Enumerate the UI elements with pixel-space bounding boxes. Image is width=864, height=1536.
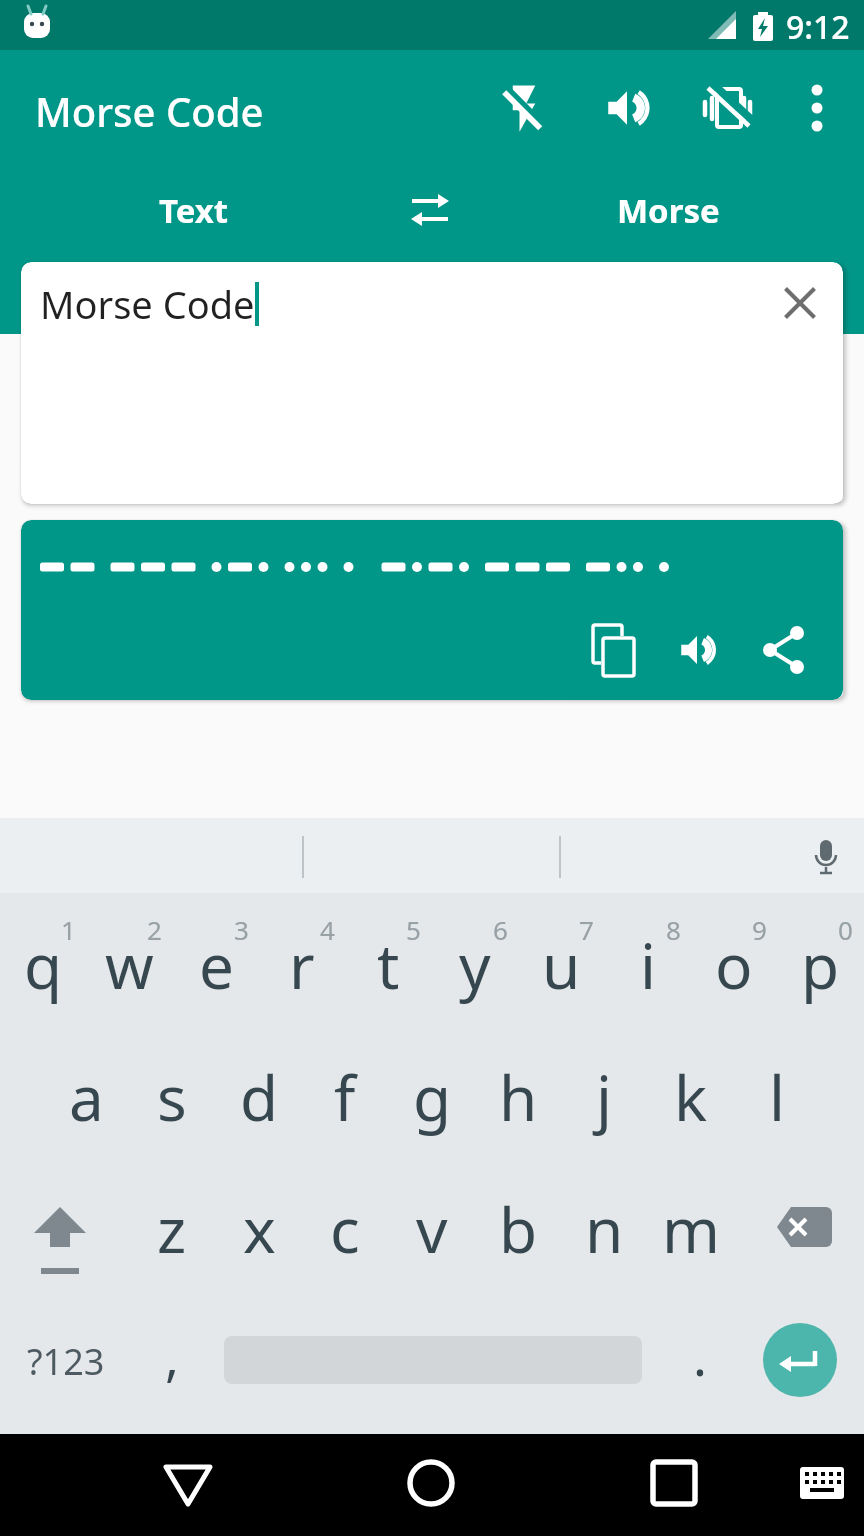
button[interactable]: s — [129, 1032, 215, 1162]
button[interactable] — [582, 618, 646, 682]
staticText: 2 — [147, 912, 162, 947]
button[interactable] — [492, 76, 556, 140]
staticText: 6 — [493, 912, 508, 947]
button[interactable]: r — [259, 900, 345, 1030]
button[interactable] — [665, 618, 729, 682]
button[interactable]: u — [518, 900, 604, 1030]
button[interactable]: k — [648, 1032, 734, 1162]
button[interactable]: a — [43, 1032, 129, 1162]
button[interactable]: x — [216, 1164, 302, 1294]
button[interactable]: . — [660, 1290, 740, 1420]
staticText: p — [801, 923, 840, 1007]
staticText: 3 — [234, 912, 249, 947]
staticText: f — [334, 1055, 356, 1139]
button[interactable]: q — [0, 900, 86, 1030]
staticText: 4 — [320, 912, 335, 947]
staticText: z — [157, 1187, 187, 1271]
button[interactable]: z — [129, 1164, 215, 1294]
button[interactable] — [768, 271, 832, 335]
staticText: 9 — [752, 912, 767, 947]
staticText: 9:12 — [786, 5, 850, 49]
button[interactable]: c — [302, 1164, 388, 1294]
staticText: y — [459, 923, 491, 1007]
button[interactable]: i — [605, 900, 691, 1030]
staticText: n — [585, 1187, 624, 1271]
staticText: r — [289, 923, 315, 1007]
button[interactable] — [386, 1438, 476, 1528]
button[interactable] — [782, 1443, 862, 1523]
button[interactable] — [143, 1439, 233, 1529]
staticText: 7 — [579, 912, 594, 947]
button[interactable]: m — [648, 1164, 734, 1294]
button[interactable] — [629, 1438, 719, 1528]
staticText: j — [596, 1055, 612, 1139]
button[interactable]: j — [561, 1032, 647, 1162]
button[interactable]: t — [345, 900, 431, 1030]
button[interactable] — [695, 76, 759, 140]
button[interactable]: w — [86, 900, 172, 1030]
button[interactable] — [749, 1162, 859, 1292]
staticText: l — [769, 1055, 785, 1139]
staticText: , — [165, 1320, 179, 1391]
staticText: o — [715, 923, 753, 1007]
button[interactable] — [793, 76, 841, 140]
staticText: a — [69, 1055, 104, 1139]
staticText: d — [240, 1055, 279, 1139]
staticText: 0 — [838, 912, 853, 947]
button[interactable] — [5, 1175, 115, 1305]
staticText: 8 — [666, 912, 681, 947]
button[interactable]: f — [302, 1032, 388, 1162]
staticText: i — [640, 923, 656, 1007]
staticText: h — [499, 1055, 538, 1139]
staticText: e — [199, 923, 234, 1007]
staticText: Morse Code — [40, 278, 255, 330]
staticText: ?123 — [27, 1337, 105, 1386]
button[interactable]: b — [475, 1164, 561, 1294]
button[interactable] — [763, 1323, 837, 1397]
staticText: g — [413, 1055, 452, 1139]
staticText: k — [674, 1055, 708, 1139]
button[interactable]: y — [432, 900, 518, 1030]
staticText: v — [416, 1187, 448, 1271]
staticText: . — [693, 1320, 707, 1391]
staticText: w — [105, 923, 154, 1007]
staticText: s — [157, 1055, 187, 1139]
button[interactable]: Text — [124, 180, 264, 240]
button[interactable] — [595, 76, 659, 140]
button[interactable]: p — [777, 900, 863, 1030]
button[interactable]: h — [475, 1032, 561, 1162]
button[interactable]: v — [389, 1164, 475, 1294]
button[interactable]: , — [132, 1290, 212, 1420]
staticText: x — [243, 1187, 276, 1271]
button[interactable]: l — [734, 1032, 820, 1162]
button[interactable]: d — [216, 1032, 302, 1162]
staticText: b — [499, 1187, 538, 1271]
button[interactable]: e — [173, 900, 259, 1030]
button[interactable] — [395, 180, 465, 240]
staticText: Morse — [617, 188, 720, 233]
button[interactable]: ?123 — [6, 1296, 126, 1426]
button[interactable]: Morse — [588, 180, 748, 240]
button[interactable]: g — [389, 1032, 475, 1162]
staticText: q — [24, 923, 63, 1007]
staticText: 1 — [61, 912, 76, 947]
staticText: 5 — [406, 912, 421, 947]
staticText: Morse Code — [35, 84, 264, 138]
staticText: Text — [159, 188, 229, 233]
button[interactable]: n — [561, 1164, 647, 1294]
button[interactable] — [752, 618, 816, 682]
staticText: m — [662, 1187, 720, 1271]
button[interactable]: o — [691, 900, 777, 1030]
staticText: c — [330, 1187, 360, 1271]
staticText: u — [542, 923, 581, 1007]
staticText: t — [377, 923, 400, 1007]
